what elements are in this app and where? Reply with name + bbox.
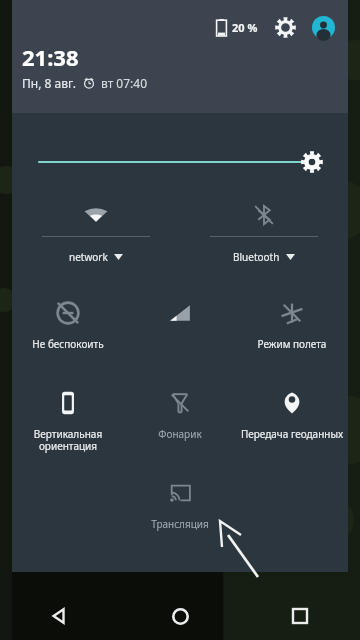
button[interactable]: Settings	[272, 14, 298, 40]
button[interactable]: Bluetooth	[180, 191, 348, 286]
staticText: Режим полета	[238, 337, 346, 351]
staticText: Пн, 8 авг.	[22, 75, 76, 91]
button[interactable]: Не беспокоить	[12, 286, 124, 376]
button[interactable]: Back	[0, 592, 120, 640]
button[interactable]: Вертикальная ориентация	[12, 376, 124, 466]
button[interactable]: Передача геоданных	[236, 376, 348, 466]
staticText: вт 07:40	[101, 75, 148, 91]
button[interactable]: Mobile data	[124, 286, 236, 376]
staticText: 20 %	[232, 20, 258, 35]
button[interactable]: Home	[120, 592, 240, 640]
staticText: Вертикальная ориентация	[14, 427, 122, 453]
staticText: Фонарик	[126, 427, 234, 441]
button[interactable]: Recent apps	[240, 592, 360, 640]
button[interactable]: User account	[310, 14, 336, 40]
staticText: Не беспокоить	[14, 337, 122, 351]
button[interactable]: Фонарик	[124, 376, 236, 466]
button[interactable]: Трансляция	[124, 466, 236, 546]
staticText: Bluetooth	[233, 250, 280, 264]
button[interactable]: network	[12, 191, 180, 286]
button[interactable]: Brightness	[12, 113, 348, 191]
staticText: Передача геоданных	[238, 427, 346, 441]
staticText: Трансляция	[126, 517, 234, 531]
staticText: 21:38	[22, 42, 79, 72]
staticText: network	[69, 250, 108, 264]
button[interactable]: Режим полета	[236, 286, 348, 376]
